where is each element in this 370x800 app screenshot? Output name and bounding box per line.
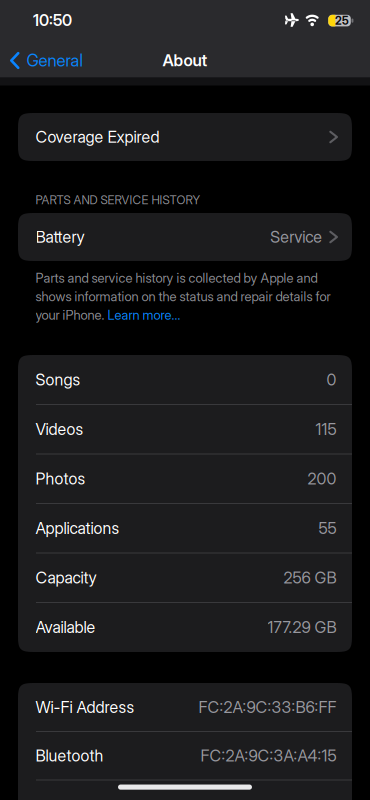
staticText: Service: [270, 227, 322, 247]
staticText: 10:50: [33, 11, 72, 30]
staticText: General: [26, 50, 82, 71]
staticText: Videos: [35, 420, 83, 439]
staticText: your iPhone.: [35, 307, 107, 323]
staticText: About: [162, 50, 207, 70]
staticText: FC:2A:9C:33:B6:FF: [198, 698, 336, 717]
staticText: shows information on the status and repa…: [35, 289, 330, 304]
staticText: Capacity: [35, 568, 96, 587]
staticText: 177.29 GB: [267, 618, 336, 637]
staticText: Battery: [35, 227, 84, 247]
staticText: 25: [335, 14, 349, 27]
staticText: Parts and service history is collected b…: [35, 270, 317, 286]
staticText: 256 GB: [283, 568, 336, 587]
staticText: Wi-Fi Address: [35, 698, 134, 717]
staticText: 0: [326, 370, 336, 389]
staticText: Applications: [35, 519, 119, 538]
staticText: 200: [307, 469, 336, 488]
staticText: PARTS AND SERVICE HISTORY: [35, 193, 200, 207]
staticText: 55: [318, 519, 336, 538]
button[interactable]: Back: [10, 47, 82, 73]
staticText: 115: [315, 420, 336, 439]
button[interactable]: Learn more...: [107, 307, 180, 323]
button[interactable]: Coverage Expired: [18, 113, 352, 161]
staticText: Learn more...: [107, 307, 180, 323]
staticText: FC:2A:9C:3A:A4:15: [200, 746, 336, 765]
staticText: Photos: [35, 469, 85, 488]
staticText: Bluetooth: [35, 746, 103, 765]
staticText: Songs: [35, 370, 80, 389]
staticText: Available: [35, 618, 95, 637]
staticText: Coverage Expired: [35, 127, 159, 147]
button[interactable]: Battery: [18, 213, 352, 261]
